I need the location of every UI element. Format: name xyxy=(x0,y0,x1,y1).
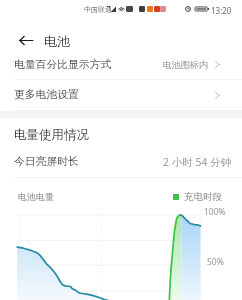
button[interactable]: 今日亮屏时长 xyxy=(0,147,242,178)
staticText: 13:20 xyxy=(211,5,232,16)
staticText: 更多电池设置 xyxy=(14,88,79,102)
button[interactable]: Back xyxy=(0,21,44,50)
button[interactable]: 更多电池设置 xyxy=(0,80,242,111)
staticText: 100% xyxy=(204,206,226,218)
staticText: 电量使用情况 xyxy=(14,127,89,143)
staticText: 电池 xyxy=(44,33,70,49)
button[interactable]: 电量百分比显示方式 xyxy=(0,50,242,80)
staticText: 中国联通 xyxy=(84,5,112,14)
staticText: 电量百分比显示方式 xyxy=(14,58,112,72)
staticText: 电池电量 xyxy=(18,191,54,202)
staticText: 电池图标内 xyxy=(162,59,208,71)
staticText: 50% xyxy=(207,256,224,268)
staticText: 今日亮屏时长 xyxy=(14,155,79,169)
staticText: 2 小时 54 分钟 xyxy=(163,155,232,169)
staticText: 充电时段 xyxy=(184,191,222,203)
